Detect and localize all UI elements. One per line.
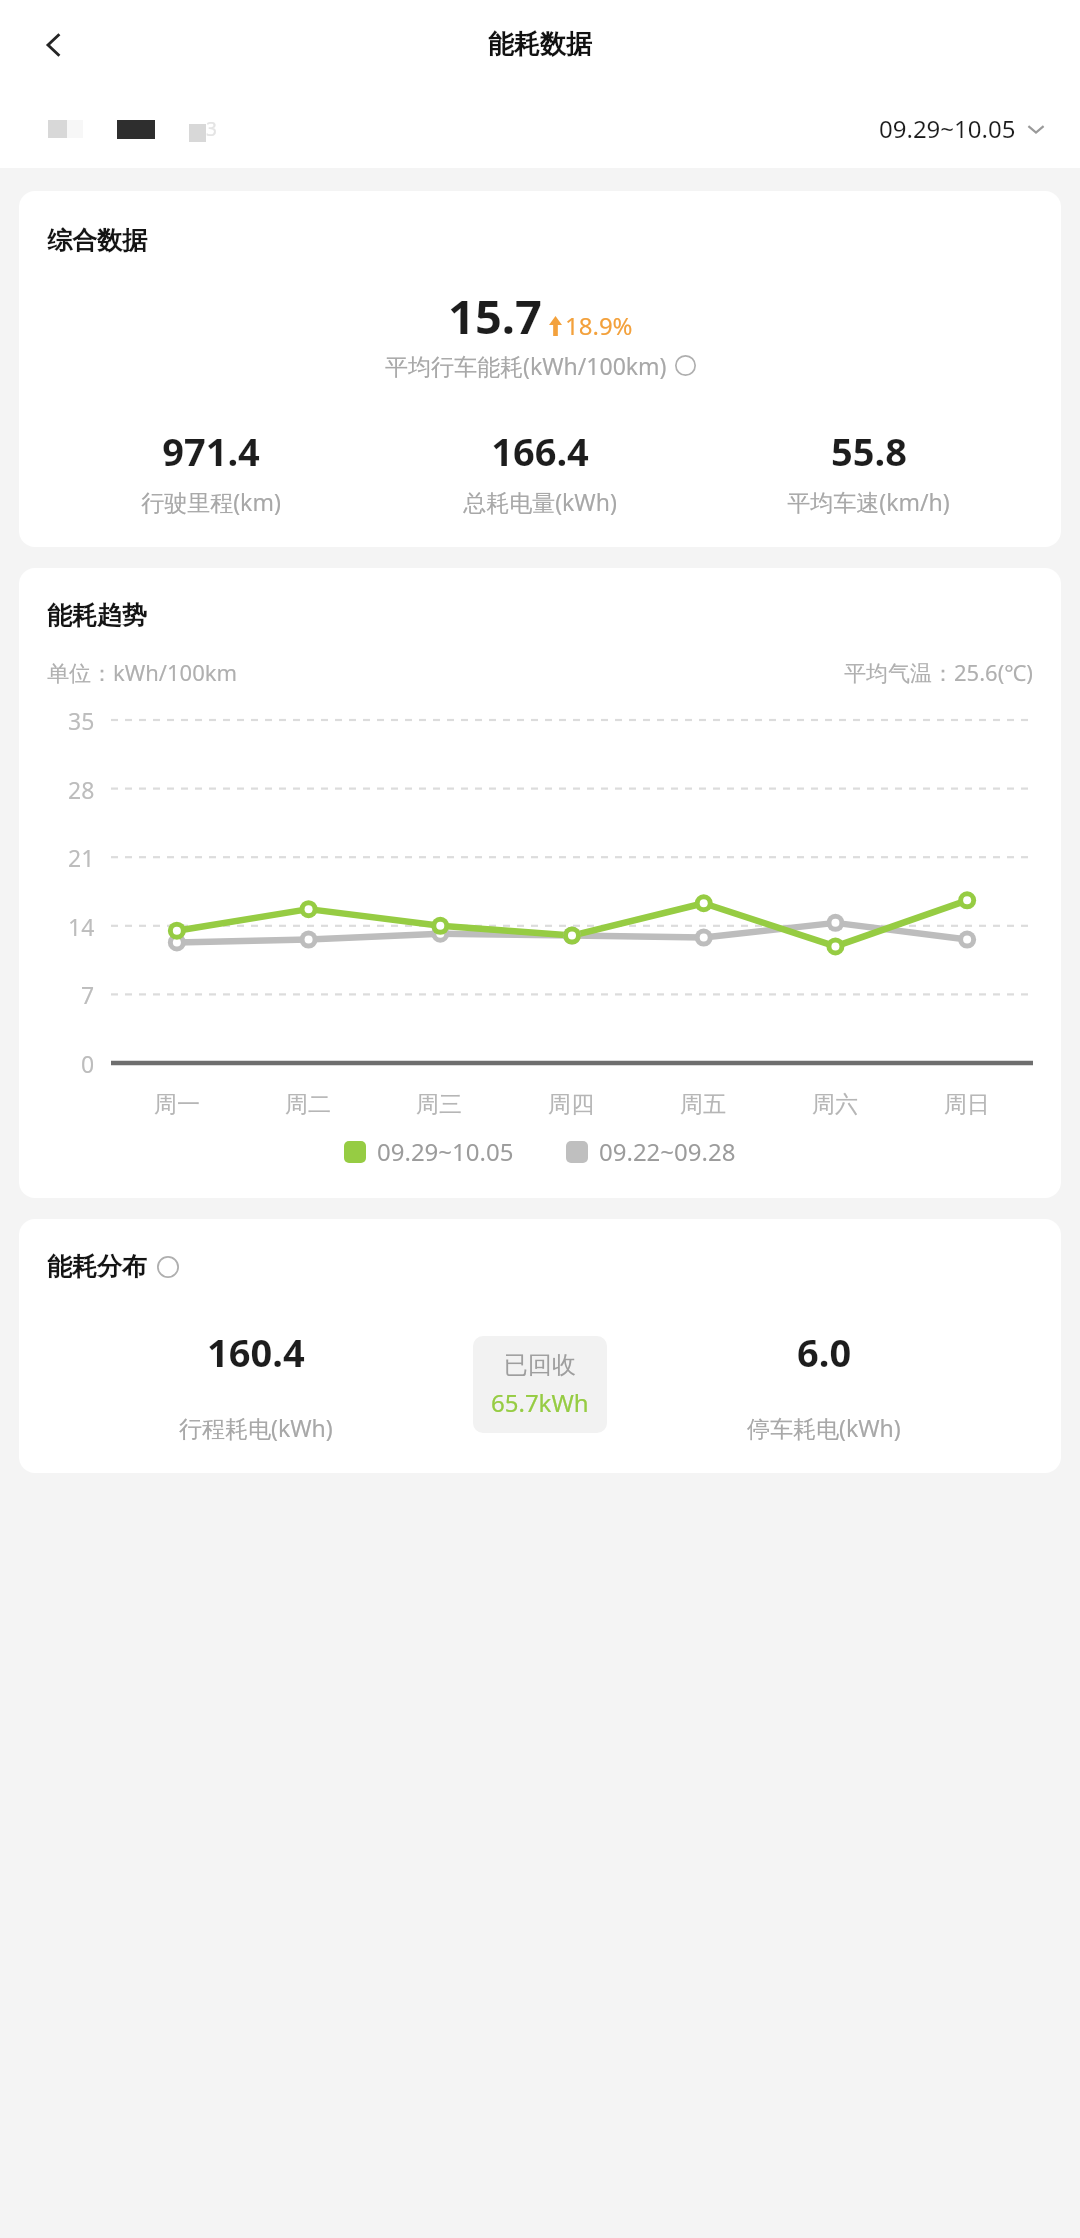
button[interactable]: 971.4 (47, 425, 375, 517)
staticText: 综合数据 (47, 225, 147, 256)
button[interactable]: Back (28, 19, 80, 71)
staticText: 65.7kWh (491, 1386, 589, 1419)
staticText: 周三 (416, 1090, 462, 1119)
staticText: 已回收 (504, 1350, 576, 1380)
staticText: 停车耗电(kWh) (747, 1412, 901, 1443)
button[interactable]: 09.29~10.05 (340, 1131, 518, 1172)
button[interactable]: 160.4 (47, 1326, 465, 1443)
staticText: 能耗分布 (47, 1251, 147, 1282)
staticText: 周日 (944, 1090, 990, 1119)
staticText: 55.8 (831, 425, 907, 477)
button[interactable]: 已回收 (473, 1336, 607, 1433)
staticText: 09.22~09.28 (599, 1135, 736, 1168)
staticText: 09.29~10.05 (377, 1135, 514, 1168)
staticText: 160.4 (207, 1326, 305, 1378)
button[interactable]: 09.22~09.28 (562, 1131, 740, 1172)
button[interactable]: 166.4 (375, 425, 704, 517)
button[interactable]: 综合数据 (19, 191, 1061, 547)
staticText: 周二 (285, 1090, 331, 1119)
staticText: 971.4 (162, 425, 260, 477)
staticText: 6.0 (797, 1326, 852, 1378)
staticText: 行程耗电(kWh) (179, 1412, 333, 1443)
staticText: 周六 (812, 1090, 858, 1119)
staticText: 行驶里程(km) (141, 486, 281, 517)
staticText: 能耗趋势 (47, 600, 147, 631)
staticText: 3 (206, 116, 217, 142)
staticText: 7 (81, 979, 95, 1009)
button[interactable]: Filter two (113, 116, 159, 143)
button[interactable]: 55.8 (704, 425, 1033, 517)
button[interactable]: 6.0 (615, 1326, 1033, 1443)
staticText: 平均行车能耗(kWh/100km) (385, 350, 667, 381)
button[interactable]: 能耗趋势 (19, 568, 1061, 1198)
staticText: 平均气温：25.6(℃) (844, 657, 1033, 687)
staticText: 总耗电量(kWh) (463, 486, 617, 517)
staticText: 周四 (548, 1090, 594, 1119)
staticText: 15.7 (448, 284, 542, 348)
staticText: 18.9% (565, 309, 633, 342)
staticText: 0 (81, 1048, 95, 1078)
staticText: 166.4 (491, 425, 589, 477)
staticText: 周一 (154, 1090, 200, 1119)
staticText: 14 (68, 911, 95, 941)
button[interactable]: Filter three (185, 112, 221, 146)
staticText: 平均车速(km/h) (787, 486, 950, 517)
staticText: 28 (68, 774, 95, 804)
staticText: 35 (68, 705, 95, 735)
staticText: 单位：kWh/100km (47, 657, 238, 687)
button[interactable]: 能耗分布 (19, 1219, 1061, 1473)
button[interactable]: 09.29~10.05 (873, 106, 1052, 151)
staticText: 周五 (680, 1090, 726, 1119)
staticText: 21 (68, 842, 95, 872)
staticText: 能耗数据 (488, 28, 592, 61)
button[interactable]: Filter one (44, 116, 87, 142)
staticText: 09.29~10.05 (879, 112, 1016, 145)
